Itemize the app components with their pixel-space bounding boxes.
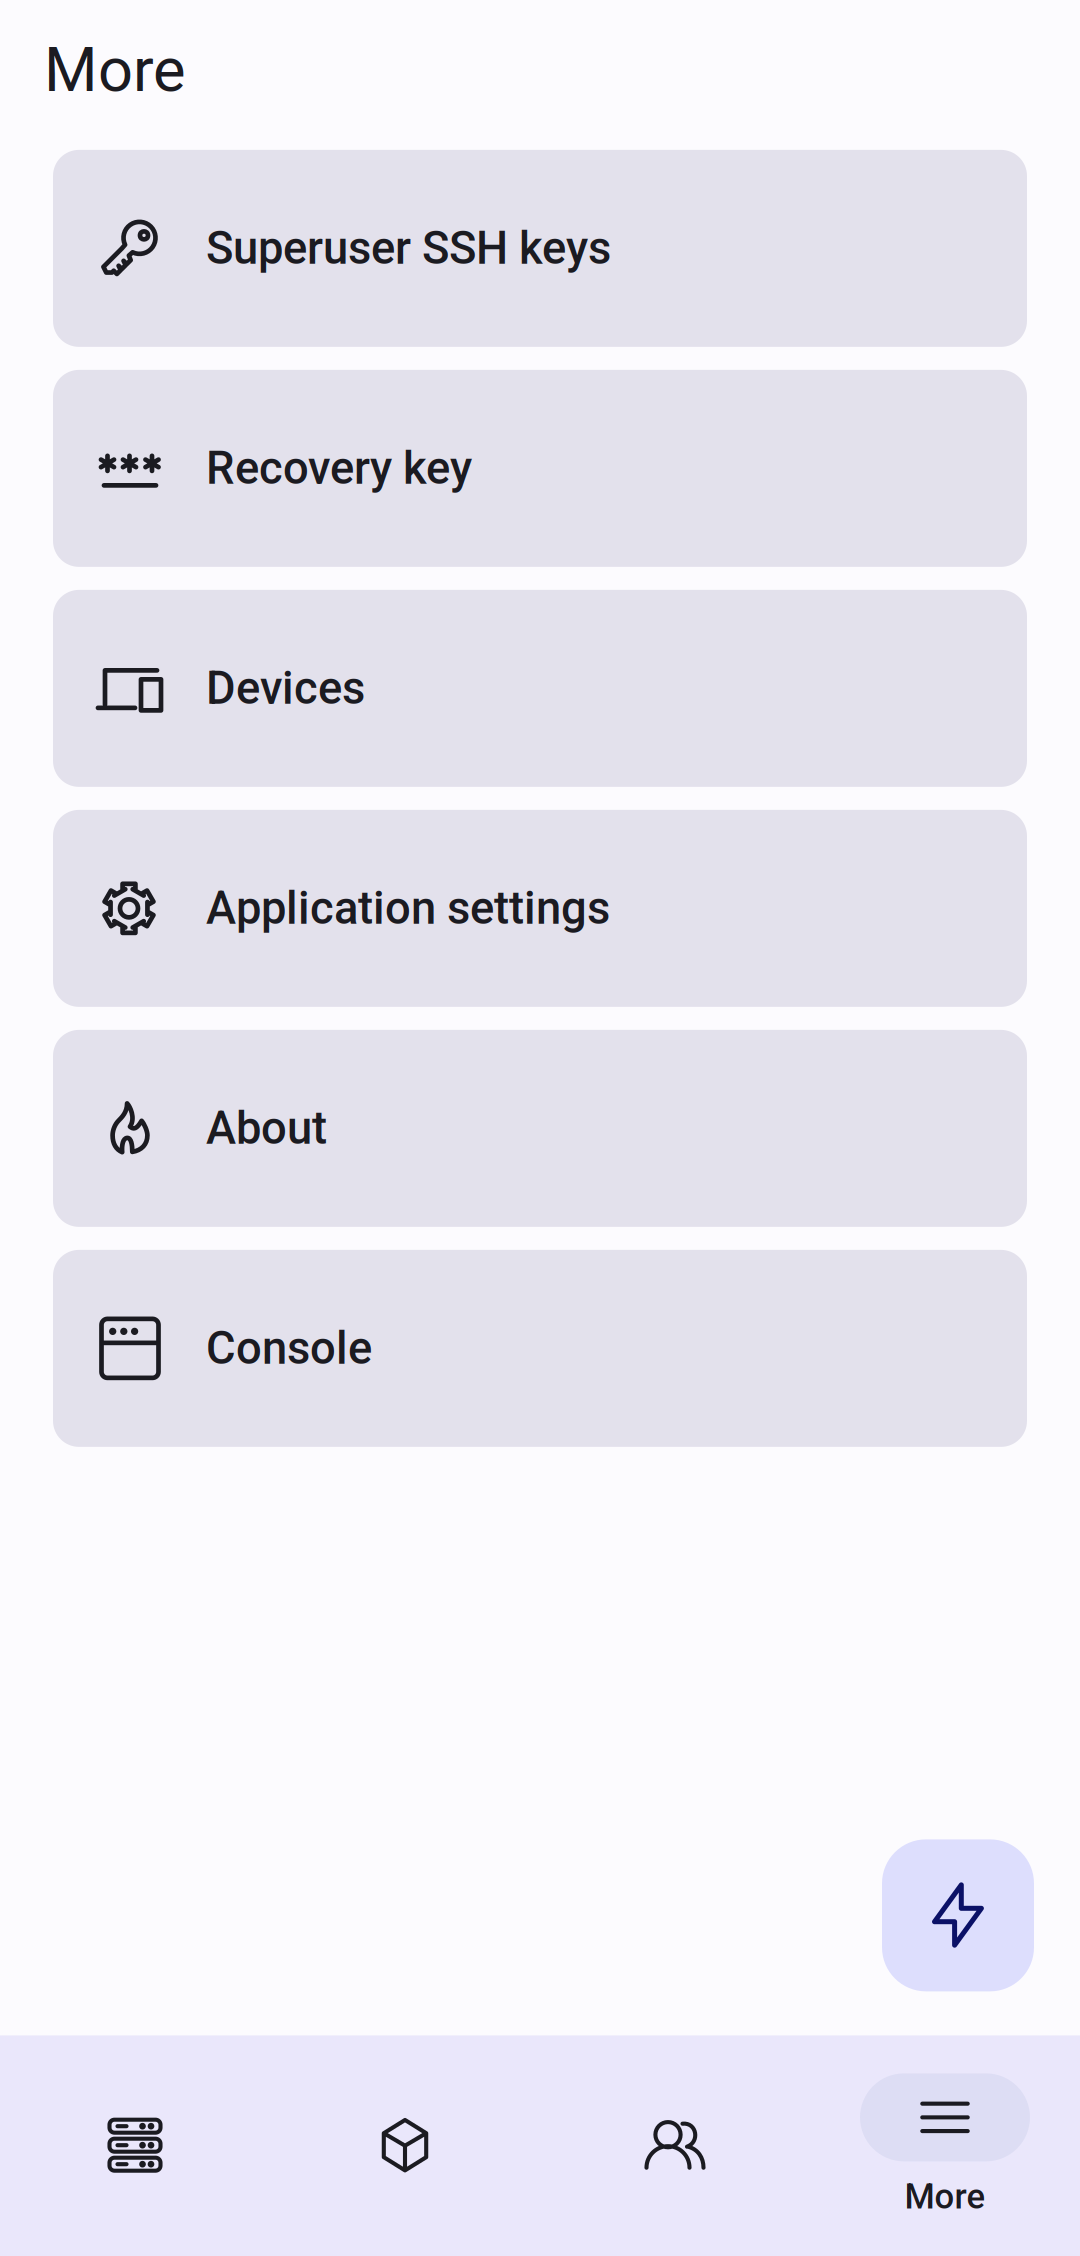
staticText: Application settings bbox=[206, 882, 610, 935]
staticText: More bbox=[44, 34, 186, 106]
button[interactable]: Servers bbox=[0, 2101, 270, 2189]
button[interactable]: Devices bbox=[53, 590, 1027, 787]
button[interactable]: Recovery key bbox=[53, 370, 1027, 567]
button[interactable]: About bbox=[53, 1030, 1027, 1227]
button[interactable]: Containers bbox=[270, 2101, 540, 2189]
button[interactable]: Team bbox=[540, 2101, 810, 2189]
staticText: More bbox=[904, 2176, 985, 2217]
staticText: Recovery key bbox=[206, 442, 472, 495]
button[interactable]: Application settings bbox=[53, 810, 1027, 1007]
staticText: About bbox=[206, 1102, 327, 1155]
button[interactable]: Power actions bbox=[882, 1839, 1034, 1991]
button[interactable]: More bbox=[810, 2073, 1080, 2217]
staticText: Devices bbox=[206, 662, 365, 715]
button[interactable]: Superuser SSH keys bbox=[53, 150, 1027, 347]
button[interactable]: Console bbox=[53, 1250, 1027, 1447]
staticText: Console bbox=[206, 1322, 372, 1375]
staticText: Superuser SSH keys bbox=[206, 222, 611, 275]
